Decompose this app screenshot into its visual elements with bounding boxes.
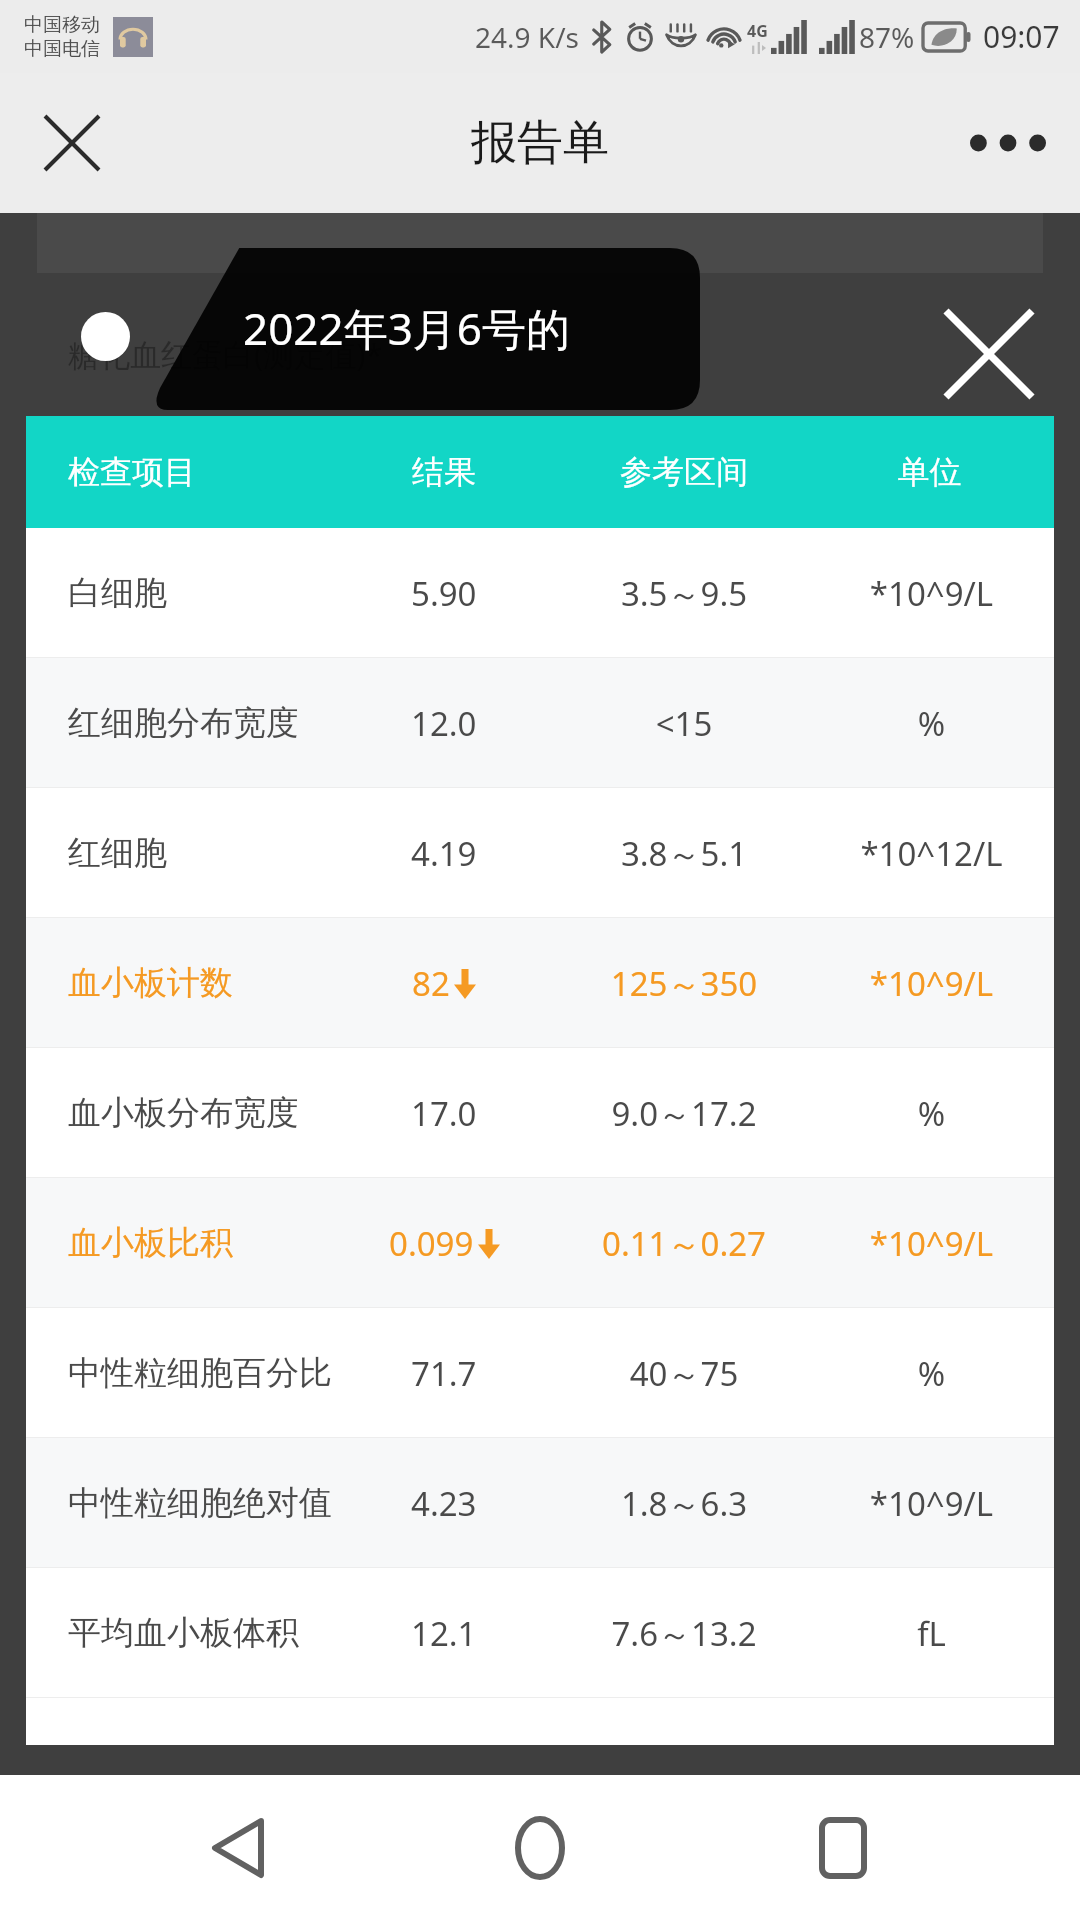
staticText: *10^9/L xyxy=(821,961,1042,1006)
staticText: 4G xyxy=(747,20,768,42)
button[interactable]: 红细胞 xyxy=(26,788,1054,918)
staticText: 7.6～13.2 xyxy=(547,1611,821,1656)
staticText: fL xyxy=(821,1611,1042,1656)
staticText: 3.8～5.1 xyxy=(547,831,821,876)
button[interactable]: 关闭 xyxy=(20,91,124,195)
staticText: *10^9/L xyxy=(821,1481,1042,1526)
staticText: 中国电信 xyxy=(24,37,100,61)
button[interactable]: 中性粒细胞绝对值 xyxy=(26,1438,1054,1568)
button[interactable]: 血小板计数 xyxy=(26,918,1054,1048)
staticText: 87% xyxy=(859,18,915,56)
staticText: 中国移动 xyxy=(24,13,100,37)
staticText: 4.19 xyxy=(411,831,477,876)
staticText: 12.0 xyxy=(411,701,477,746)
staticText: 红细胞分布宽度 xyxy=(68,702,341,744)
button[interactable]: 更多 xyxy=(956,91,1060,195)
staticText: 检查项目 xyxy=(68,452,341,492)
staticText: *10^9/L xyxy=(821,571,1042,616)
staticText: 2022年3月6号的 xyxy=(243,298,571,358)
staticText: 24.9 K/s xyxy=(475,18,579,56)
button[interactable]: 最近任务 xyxy=(778,1783,908,1913)
staticText: 平均血小板体积 xyxy=(68,1612,341,1654)
button[interactable]: 关闭 xyxy=(934,299,1044,409)
staticText: 40～75 xyxy=(547,1351,821,1396)
staticText: 血小板比积 xyxy=(68,1222,341,1264)
staticText: 单位 xyxy=(821,452,1038,492)
staticText: 1.8～6.3 xyxy=(547,1481,821,1526)
staticText: 中性粒细胞百分比 xyxy=(68,1352,341,1394)
staticText: 糖化血红蛋白(测定值)* xyxy=(68,333,383,375)
staticText: 09:07 xyxy=(983,16,1060,57)
staticText: 中性粒细胞绝对值 xyxy=(68,1482,341,1524)
staticText: 血小板计数 xyxy=(68,962,341,1004)
staticText: 0.11～0.27 xyxy=(547,1221,821,1266)
staticText: 71.7 xyxy=(411,1351,477,1396)
staticText: 参考区间 xyxy=(547,452,821,492)
button[interactable]: 中性粒细胞百分比 xyxy=(26,1308,1054,1438)
staticText: 3.5～9.5 xyxy=(547,571,821,616)
button[interactable]: 主页 xyxy=(475,1783,605,1913)
staticText: % xyxy=(821,1091,1042,1136)
staticText: 0.099 xyxy=(389,1221,474,1266)
staticText: 17.0 xyxy=(411,1091,477,1136)
staticText: 5.90 xyxy=(411,571,477,616)
staticText: % xyxy=(821,1351,1042,1396)
staticText: 血小板分布宽度 xyxy=(68,1092,341,1134)
staticText: 82 xyxy=(412,961,450,1006)
button[interactable]: 平均血小板体积 xyxy=(26,1568,1054,1698)
staticText: 12.1 xyxy=(411,1611,477,1656)
staticText: 结果 xyxy=(341,452,547,492)
button[interactable]: 血小板分布宽度 xyxy=(26,1048,1054,1178)
staticText: 报告单 xyxy=(471,114,609,172)
button[interactable]: 红细胞分布宽度 xyxy=(26,658,1054,788)
staticText: <15 xyxy=(547,701,821,746)
button[interactable]: 返回 xyxy=(173,1783,303,1913)
staticText: 125～350 xyxy=(547,961,821,1006)
staticText: *10^12/L xyxy=(821,831,1042,876)
staticText: 4.23 xyxy=(411,1481,477,1526)
staticText: *10^9/L xyxy=(821,1221,1042,1266)
button[interactable]: 白细胞 xyxy=(26,528,1054,658)
staticText: % xyxy=(821,701,1042,746)
button[interactable]: 血小板比积 xyxy=(26,1178,1054,1308)
staticText: 9.0～17.2 xyxy=(547,1091,821,1136)
staticText: 红细胞 xyxy=(68,832,341,874)
staticText: 白细胞 xyxy=(68,572,341,614)
